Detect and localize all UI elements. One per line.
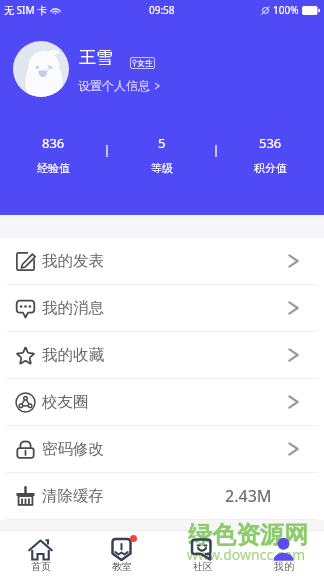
staticText: 我的发表 — [42, 251, 104, 271]
button[interactable]: 社区 — [162, 531, 243, 576]
button[interactable]: 5 — [108, 134, 215, 175]
staticText: 5 — [158, 134, 166, 152]
staticText: 我的收藏 — [42, 345, 104, 365]
button[interactable]: 836 — [0, 134, 106, 175]
staticText: 绿色资源网 — [188, 520, 308, 550]
button[interactable]: 首页 — [0, 531, 81, 576]
other: 社区 — [190, 537, 215, 562]
other: 首页 — [28, 537, 53, 562]
button[interactable]: 设置个人信息 — [78, 78, 160, 93]
staticText: 教室 — [112, 560, 132, 573]
staticText: 经验值 — [37, 161, 70, 175]
button[interactable]: 我的发表 — [0, 238, 324, 284]
button[interactable]: 536 — [217, 134, 324, 175]
staticText: 09:58 — [149, 3, 175, 17]
staticText: 我的消息 — [42, 298, 104, 318]
button[interactable]: 我的消息 — [0, 285, 324, 331]
staticText: 我的 — [274, 560, 294, 573]
button[interactable]: 我的收藏 — [0, 332, 324, 378]
staticText: 女生 — [137, 58, 153, 68]
staticText: 536 — [259, 134, 282, 152]
other: 我的 — [271, 537, 296, 562]
staticText: 100% — [273, 3, 299, 17]
button[interactable]: 校友圈 — [0, 379, 324, 425]
staticText: 设置个人信息 — [78, 78, 150, 93]
other: 教室 — [109, 537, 134, 562]
staticText: 首页 — [31, 560, 51, 573]
staticText: 清除缓存 — [42, 486, 104, 506]
staticText: 等级 — [151, 161, 173, 175]
staticText: 王雪 — [79, 47, 113, 68]
button[interactable]: 密码修改 — [0, 426, 324, 472]
button[interactable]: 头像 — [13, 41, 69, 97]
staticText: 积分值 — [254, 161, 287, 175]
button[interactable]: 我的 — [243, 531, 324, 576]
staticText: 校友圈 — [42, 392, 89, 412]
staticText: 无 SIM 卡 — [4, 3, 48, 17]
staticText: www.downcc.com — [187, 545, 306, 564]
button[interactable]: 教室 — [81, 531, 162, 576]
staticText: 社区 — [193, 560, 213, 573]
button[interactable]: 清除缓存 — [0, 473, 324, 519]
staticText: 836 — [42, 134, 65, 152]
staticText: 密码修改 — [42, 439, 104, 459]
staticText: 2.43M — [225, 485, 272, 507]
